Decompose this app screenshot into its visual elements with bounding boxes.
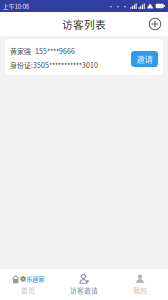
staticText: 邀请: [136, 53, 152, 65]
staticText: 乐居家: [27, 274, 45, 283]
staticText: •••: [107, 1, 128, 11]
button[interactable]: 访客邀请: [56, 269, 112, 299]
staticText: 首页: [21, 285, 35, 295]
button[interactable]: 我的: [112, 269, 168, 299]
button[interactable]: 邀请: [131, 39, 158, 67]
button[interactable]: 乐居家: [0, 269, 56, 299]
button[interactable]: Add visitor: [144, 12, 166, 36]
staticText: 黄家强 155****9666: [10, 46, 75, 56]
staticText: 访客邀请: [70, 285, 98, 295]
staticText: 访客列表: [62, 16, 106, 32]
staticText: 身份证:3505***********3010: [10, 60, 98, 70]
staticText: 上午10:08: [2, 2, 28, 10]
staticText: 我的: [133, 285, 147, 295]
